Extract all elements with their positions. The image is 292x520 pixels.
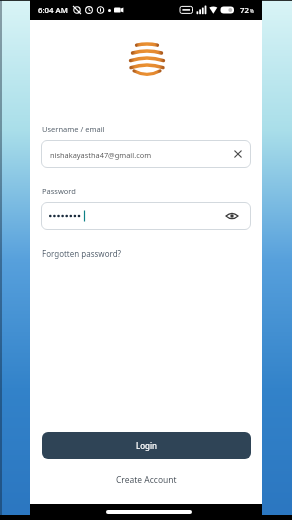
staticText: Forgotten password? xyxy=(42,248,122,259)
staticText: 72 xyxy=(240,5,249,16)
staticText: 6:04 AM xyxy=(38,5,68,16)
staticText: nishakayastha47@gmail.com xyxy=(50,150,152,160)
staticText: % xyxy=(250,8,254,14)
button[interactable]: Create Account xyxy=(30,474,262,486)
staticText: Create Account xyxy=(116,474,177,486)
button[interactable] xyxy=(41,202,251,230)
staticText: Username / email xyxy=(42,124,105,134)
button[interactable]: nishakayastha47@gmail.com xyxy=(41,140,251,168)
button[interactable]: Forgotten password? xyxy=(42,248,122,259)
staticText: Login xyxy=(136,440,157,451)
staticText: Password xyxy=(42,186,76,196)
button[interactable]: Login xyxy=(42,432,251,459)
